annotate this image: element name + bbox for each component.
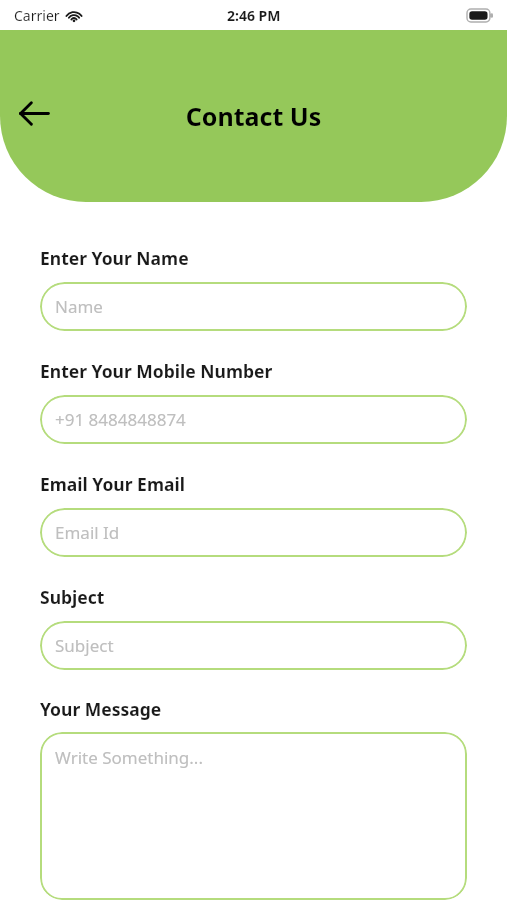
button[interactable]: Write Something... [40,732,467,900]
staticText: Your Message [40,697,162,721]
button[interactable]: +91 8484848874 [40,395,467,444]
button[interactable]: Back [10,89,58,137]
staticText: Carrier [14,6,60,25]
staticText: Enter Your Name [40,246,189,270]
staticText: Contact Us [0,99,507,133]
staticText: +91 8484848874 [55,408,186,431]
staticText: 2:46 PM [227,6,281,25]
staticText: Email Your Email [40,472,185,496]
button[interactable]: Name [40,282,467,331]
staticText: Name [55,295,103,318]
button[interactable]: Email Id [40,508,467,557]
button[interactable]: Subject [40,621,467,670]
staticText: Subject [40,585,105,609]
staticText: Email Id [55,521,120,544]
staticText: Enter Your Mobile Number [40,359,273,383]
staticText: Write Something... [55,746,203,769]
staticText: Subject [55,634,114,657]
